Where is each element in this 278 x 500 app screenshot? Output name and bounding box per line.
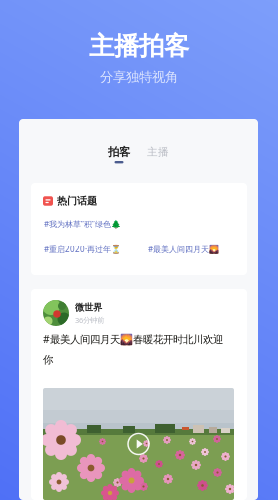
button[interactable]: 拍客 bbox=[108, 145, 130, 163]
button[interactable]: 主播 bbox=[147, 145, 169, 163]
staticText: 主播拍客 bbox=[89, 30, 189, 62]
staticText: 热门话题 bbox=[57, 195, 97, 207]
staticText: #我为林草“积”绿色🌲 bbox=[44, 219, 121, 229]
staticText: 主播 bbox=[147, 145, 169, 159]
staticText: 微世界 bbox=[75, 302, 102, 313]
staticText: #重启2020·再过年⏳ bbox=[44, 244, 121, 254]
button[interactable]: 热门话题 bbox=[31, 183, 247, 275]
staticText: #最美人间四月天🌄春暖花开时北川欢迎你 bbox=[43, 332, 223, 366]
button[interactable]: 微世界 bbox=[31, 289, 247, 500]
staticText: #最美人间四月天🌄 bbox=[148, 244, 219, 254]
staticText: 36分钟前 bbox=[75, 315, 104, 325]
staticText: 拍客 bbox=[108, 145, 130, 159]
staticText: 分享独特视角 bbox=[100, 69, 178, 85]
